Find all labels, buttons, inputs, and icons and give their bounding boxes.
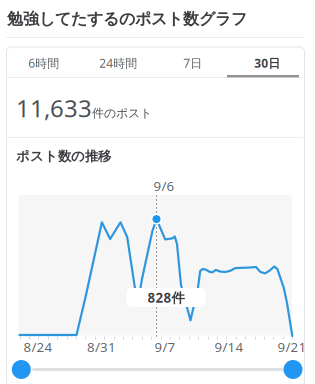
staticText: 9/21 bbox=[277, 338, 306, 356]
staticText: 30日 bbox=[254, 55, 280, 71]
staticText: 9/7 bbox=[154, 338, 175, 356]
staticText: 6時間 bbox=[28, 55, 59, 71]
staticText: 勉強してたするのポスト数グラフ bbox=[7, 9, 247, 29]
staticText: 7日 bbox=[183, 55, 202, 71]
button[interactable]: 24時間 bbox=[81, 48, 155, 78]
staticText: 9/14 bbox=[214, 338, 243, 356]
staticText: 件のポスト bbox=[92, 106, 152, 121]
staticText: 9/6 bbox=[153, 177, 174, 195]
button[interactable]: 30日 bbox=[230, 48, 304, 78]
staticText: 8/31 bbox=[87, 338, 116, 356]
staticText: ポスト数の推移 bbox=[16, 148, 111, 164]
button[interactable]: Range end bbox=[283, 360, 302, 379]
staticText: 828件 bbox=[147, 289, 184, 306]
button[interactable]: 6時間 bbox=[6, 48, 81, 78]
staticText: 8/24 bbox=[23, 338, 52, 356]
staticText: 11,633 bbox=[16, 92, 92, 124]
button[interactable]: 7日 bbox=[155, 48, 230, 78]
staticText: 24時間 bbox=[99, 55, 137, 71]
button[interactable]: Range start bbox=[12, 360, 31, 379]
